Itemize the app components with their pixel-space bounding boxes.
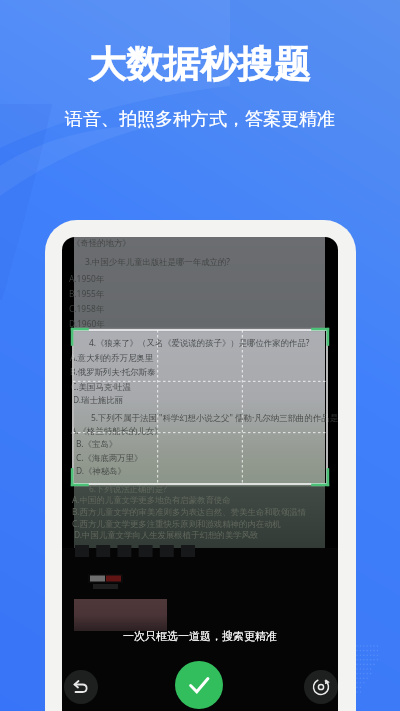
staticText: D.中国儿童文学向人生发展根植于幻想的美学风致: [74, 529, 259, 540]
button[interactable]: Confirm selection: [175, 661, 223, 709]
staticText: C.美国马克·吐温: [71, 381, 132, 392]
staticText: 4.《狼来了》（又名《爱说谎的孩子》）是哪位作家的作品?: [89, 337, 310, 348]
staticText: 大数据秒搜题: [89, 41, 311, 88]
staticText: D.1960年: [69, 318, 105, 329]
staticText: D.瑞士施比丽: [73, 394, 123, 405]
staticText: B.《宝岛》: [76, 438, 118, 449]
staticText: A.《格兰特船长的儿女》: [71, 425, 163, 436]
staticText: 一次只框选一道题，搜索更精准: [123, 629, 277, 643]
staticText: D.《神秘岛》: [76, 465, 126, 476]
staticText: C.西方儿童文学更多注重快乐原则和游戏精神的内在动机: [72, 518, 281, 529]
staticText: A.意大利的乔万尼奥里: [70, 352, 154, 363]
staticText: 语音、拍照多种方式，答案更精准: [65, 108, 335, 131]
staticText: 《奇怪的地方》: [72, 238, 131, 249]
staticText: B.俄罗斯列夫·托尔斯泰: [70, 366, 156, 377]
staticText: A.中国的儿童文学更多地负有启蒙教育使命: [72, 494, 231, 505]
staticText: B.西方儿童文学的审美准则多为表达自然、赞美生命和歌颂温情: [72, 506, 307, 517]
staticText: 3.中国少年儿童出版社是哪一年成立的?: [85, 256, 230, 267]
button[interactable]: Switch camera: [304, 670, 338, 704]
button[interactable]: Back: [64, 670, 98, 704]
staticText: 5.下列不属于法国 "科学幻想小说之父" 儒勒·凡尔纳三部曲的作品是: [91, 412, 338, 423]
staticText: A.1950年: [69, 273, 105, 284]
staticText: C.1958年: [69, 303, 105, 314]
staticText: B.1955年: [69, 288, 105, 299]
staticText: C.《海底两万里》: [76, 452, 143, 463]
staticText: 6.下列说法正确的是?: [89, 483, 167, 494]
